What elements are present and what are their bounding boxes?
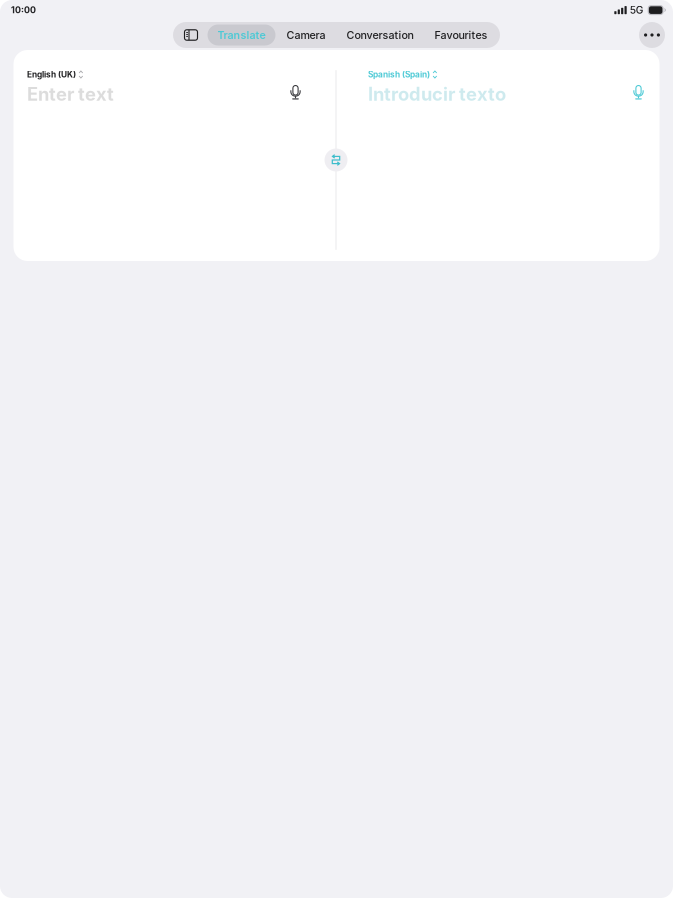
staticText: Enter text	[27, 83, 114, 105]
button[interactable]: Start dictation	[626, 82, 650, 104]
button[interactable]: Conversation	[336, 24, 423, 45]
staticText: Camera	[286, 28, 325, 41]
button[interactable]: Translate	[207, 24, 275, 45]
button[interactable]: Camera	[276, 24, 335, 45]
staticText: Conversation	[346, 28, 413, 41]
staticText: English (UK)	[27, 69, 76, 79]
button[interactable]: English (UK)	[27, 69, 83, 80]
staticText: Spanish (Spain)	[368, 69, 430, 79]
button[interactable]: Spanish (Spain)	[368, 69, 437, 80]
staticText: Introducir texto	[368, 83, 506, 105]
button[interactable]: Start dictation	[283, 82, 307, 104]
staticText: 5G	[630, 4, 644, 16]
button[interactable]: Show Sidebar	[175, 24, 206, 45]
button[interactable]: More	[639, 22, 665, 48]
staticText: Translate	[217, 28, 265, 41]
button[interactable]: Swap languages	[324, 148, 347, 171]
staticText: 10:00	[11, 5, 36, 15]
button[interactable]: Favourites	[424, 24, 497, 45]
staticText: Favourites	[434, 28, 487, 41]
